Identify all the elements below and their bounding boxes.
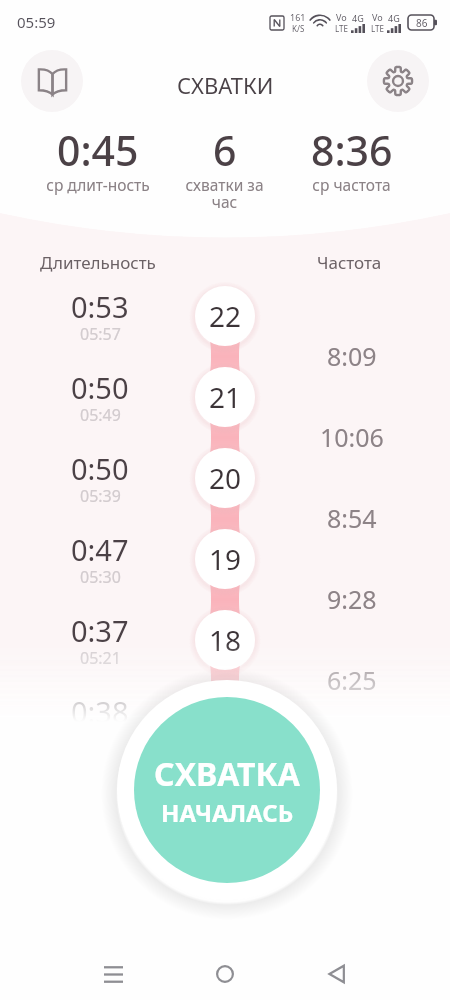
staticText: 0:53 — [71, 287, 129, 326]
staticText: 05:59 — [17, 12, 56, 32]
button[interactable]: СХВАТКА — [134, 697, 320, 883]
button[interactable]: Журнал схваток — [21, 50, 83, 112]
staticText: 05:21 — [80, 647, 121, 669]
staticText: Vo — [336, 11, 347, 23]
staticText: схватки за час — [185, 174, 264, 213]
button[interactable]: 19 — [195, 529, 255, 589]
button[interactable]: 0:50 — [40, 368, 160, 429]
staticText: Частота — [317, 251, 382, 274]
button[interactable]: 18 — [195, 610, 255, 670]
staticText: Длительность — [40, 251, 156, 274]
staticText: 86 — [416, 16, 428, 30]
staticText: 18 — [209, 621, 242, 659]
staticText: 0:47 — [71, 530, 129, 569]
staticText: 0:45 — [57, 122, 139, 178]
button[interactable]: 0:38 — [40, 692, 160, 753]
staticText: СХВАТКИ — [177, 70, 274, 100]
button[interactable]: 22 — [195, 286, 255, 346]
button[interactable]: Back — [312, 949, 362, 999]
staticText: LTE — [335, 23, 348, 34]
button[interactable]: 17 — [195, 691, 255, 751]
staticText: 8:09 — [327, 339, 377, 373]
staticText: 9:28 — [327, 582, 377, 616]
staticText: 21 — [209, 378, 242, 416]
staticText: 22 — [209, 297, 242, 335]
staticText: 0:37 — [71, 611, 129, 650]
staticText: 8:36 — [311, 122, 393, 178]
button[interactable]: Home — [200, 949, 250, 999]
staticText: ср частота — [312, 174, 391, 195]
staticText: 4G — [388, 12, 400, 24]
staticText: 19 — [209, 540, 242, 578]
button[interactable]: Настройки — [367, 50, 429, 112]
staticText: 7:10 — [327, 744, 377, 778]
button[interactable]: 0:53 — [40, 287, 160, 348]
staticText: 4G — [352, 12, 364, 24]
staticText: 6:25 — [327, 663, 377, 697]
button[interactable]: 0:47 — [40, 530, 160, 591]
staticText: 05:57 — [80, 323, 121, 345]
staticText: 0:50 — [71, 368, 129, 407]
button[interactable]: 6 — [161, 122, 288, 217]
staticText: 6 — [213, 122, 237, 178]
button[interactable]: 21 — [195, 367, 255, 427]
staticText: 8:54 — [327, 501, 377, 535]
staticText: 0:38 — [71, 692, 129, 731]
staticText: 05:30 — [80, 566, 121, 588]
button[interactable]: 0:45 — [35, 122, 161, 199]
staticText: ср длит-ность — [46, 174, 150, 195]
button[interactable]: Recent apps — [88, 949, 138, 999]
staticText: 05:39 — [80, 485, 121, 507]
staticText: 10:06 — [320, 420, 384, 454]
staticText: 20 — [209, 459, 242, 497]
staticText: LTE — [371, 23, 384, 34]
staticText: 0:50 — [71, 449, 129, 488]
staticText: Vo — [372, 11, 383, 23]
staticText: СХВАТКА — [154, 752, 300, 796]
staticText: НАЧАЛАСЬ — [161, 796, 294, 829]
button[interactable]: 0:37 — [40, 611, 160, 672]
button[interactable]: 8:36 — [288, 122, 415, 199]
button[interactable]: 20 — [195, 448, 255, 508]
staticText: K/S — [292, 23, 305, 34]
staticText: 05:49 — [80, 404, 121, 426]
staticText: 161 — [290, 11, 306, 23]
button[interactable]: 0:50 — [40, 449, 160, 510]
